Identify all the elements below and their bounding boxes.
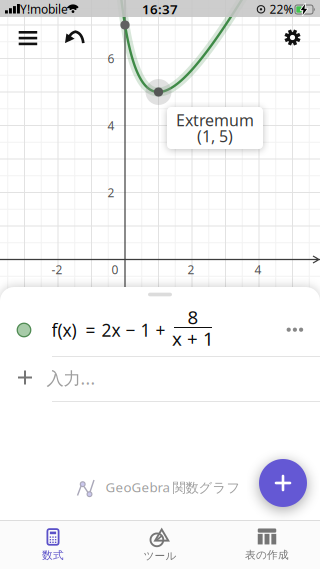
staticText: (1, 5) — [197, 125, 233, 147]
staticText: 2x − 1 + — [101, 318, 165, 341]
button[interactable]: Settings — [283, 28, 302, 47]
staticText: f(x) — [51, 318, 76, 341]
button[interactable]: Menu — [19, 31, 38, 46]
staticText: GeoGebra 関数グラフ — [105, 478, 240, 496]
staticText: -2 — [51, 261, 62, 277]
staticText: Extremum — [176, 109, 254, 131]
staticText: 数式 — [42, 549, 64, 562]
button[interactable]: ツール — [110, 522, 210, 568]
staticText: 16:37 — [142, 0, 178, 18]
staticText: 表の作成 — [245, 548, 289, 561]
staticText: 8 — [187, 305, 198, 329]
button[interactable]: 新規作成 — [259, 459, 307, 507]
button[interactable]: Hide object — [17, 323, 31, 337]
staticText: 0 — [111, 261, 118, 277]
staticText: 4 — [254, 261, 261, 277]
button[interactable]: 数式 — [3, 522, 103, 568]
button[interactable]: 入力 — [0, 356, 320, 401]
staticText: 6 — [107, 50, 114, 66]
staticText: 2 — [187, 261, 194, 277]
staticText: 入力... — [46, 366, 95, 389]
staticText: ツール — [143, 549, 176, 562]
staticText: x + 1 — [172, 326, 214, 351]
button[interactable]: More options — [286, 327, 303, 332]
staticText: 4 — [107, 117, 114, 133]
button[interactable]: Undo — [65, 29, 84, 45]
staticText: 22% — [269, 1, 293, 17]
staticText: = — [85, 318, 95, 341]
staticText: Y!mobile — [20, 1, 68, 17]
button[interactable]: 表の作成 — [217, 522, 317, 568]
staticText: 2 — [107, 184, 114, 200]
